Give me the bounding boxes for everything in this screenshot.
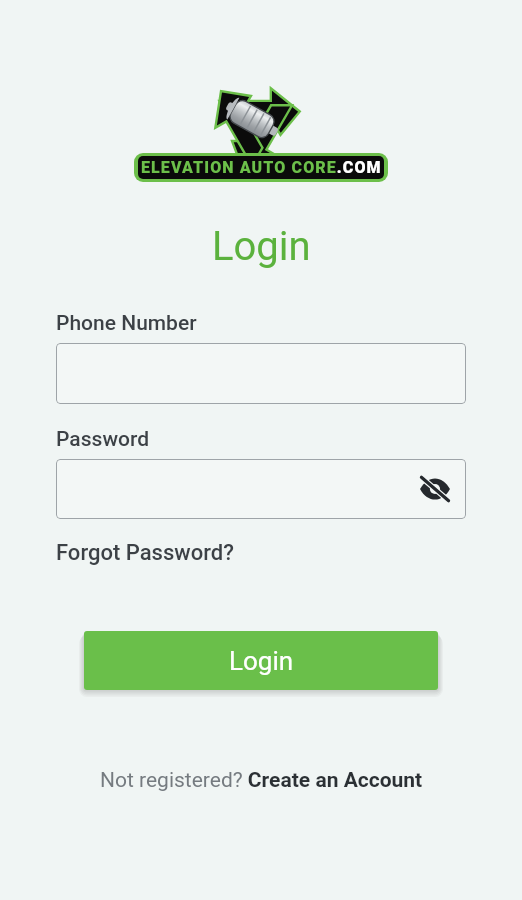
button[interactable]: Login bbox=[84, 631, 438, 690]
staticText: Password bbox=[56, 427, 150, 452]
staticText: Not registered? Create an Account bbox=[100, 768, 423, 793]
staticText: ELEVATION AUTO CORE.COM bbox=[141, 158, 382, 177]
button[interactable] bbox=[56, 343, 466, 404]
staticText: Forgot Password? bbox=[56, 540, 234, 566]
staticText: Login bbox=[229, 646, 294, 676]
button[interactable]: Show password bbox=[56, 459, 466, 519]
button[interactable]: Not registered? Create an Account bbox=[100, 768, 423, 793]
button[interactable]: Show password bbox=[416, 470, 454, 508]
staticText: Phone Number bbox=[56, 311, 197, 336]
button[interactable]: Forgot Password? bbox=[56, 540, 234, 566]
staticText: Login bbox=[212, 223, 311, 270]
